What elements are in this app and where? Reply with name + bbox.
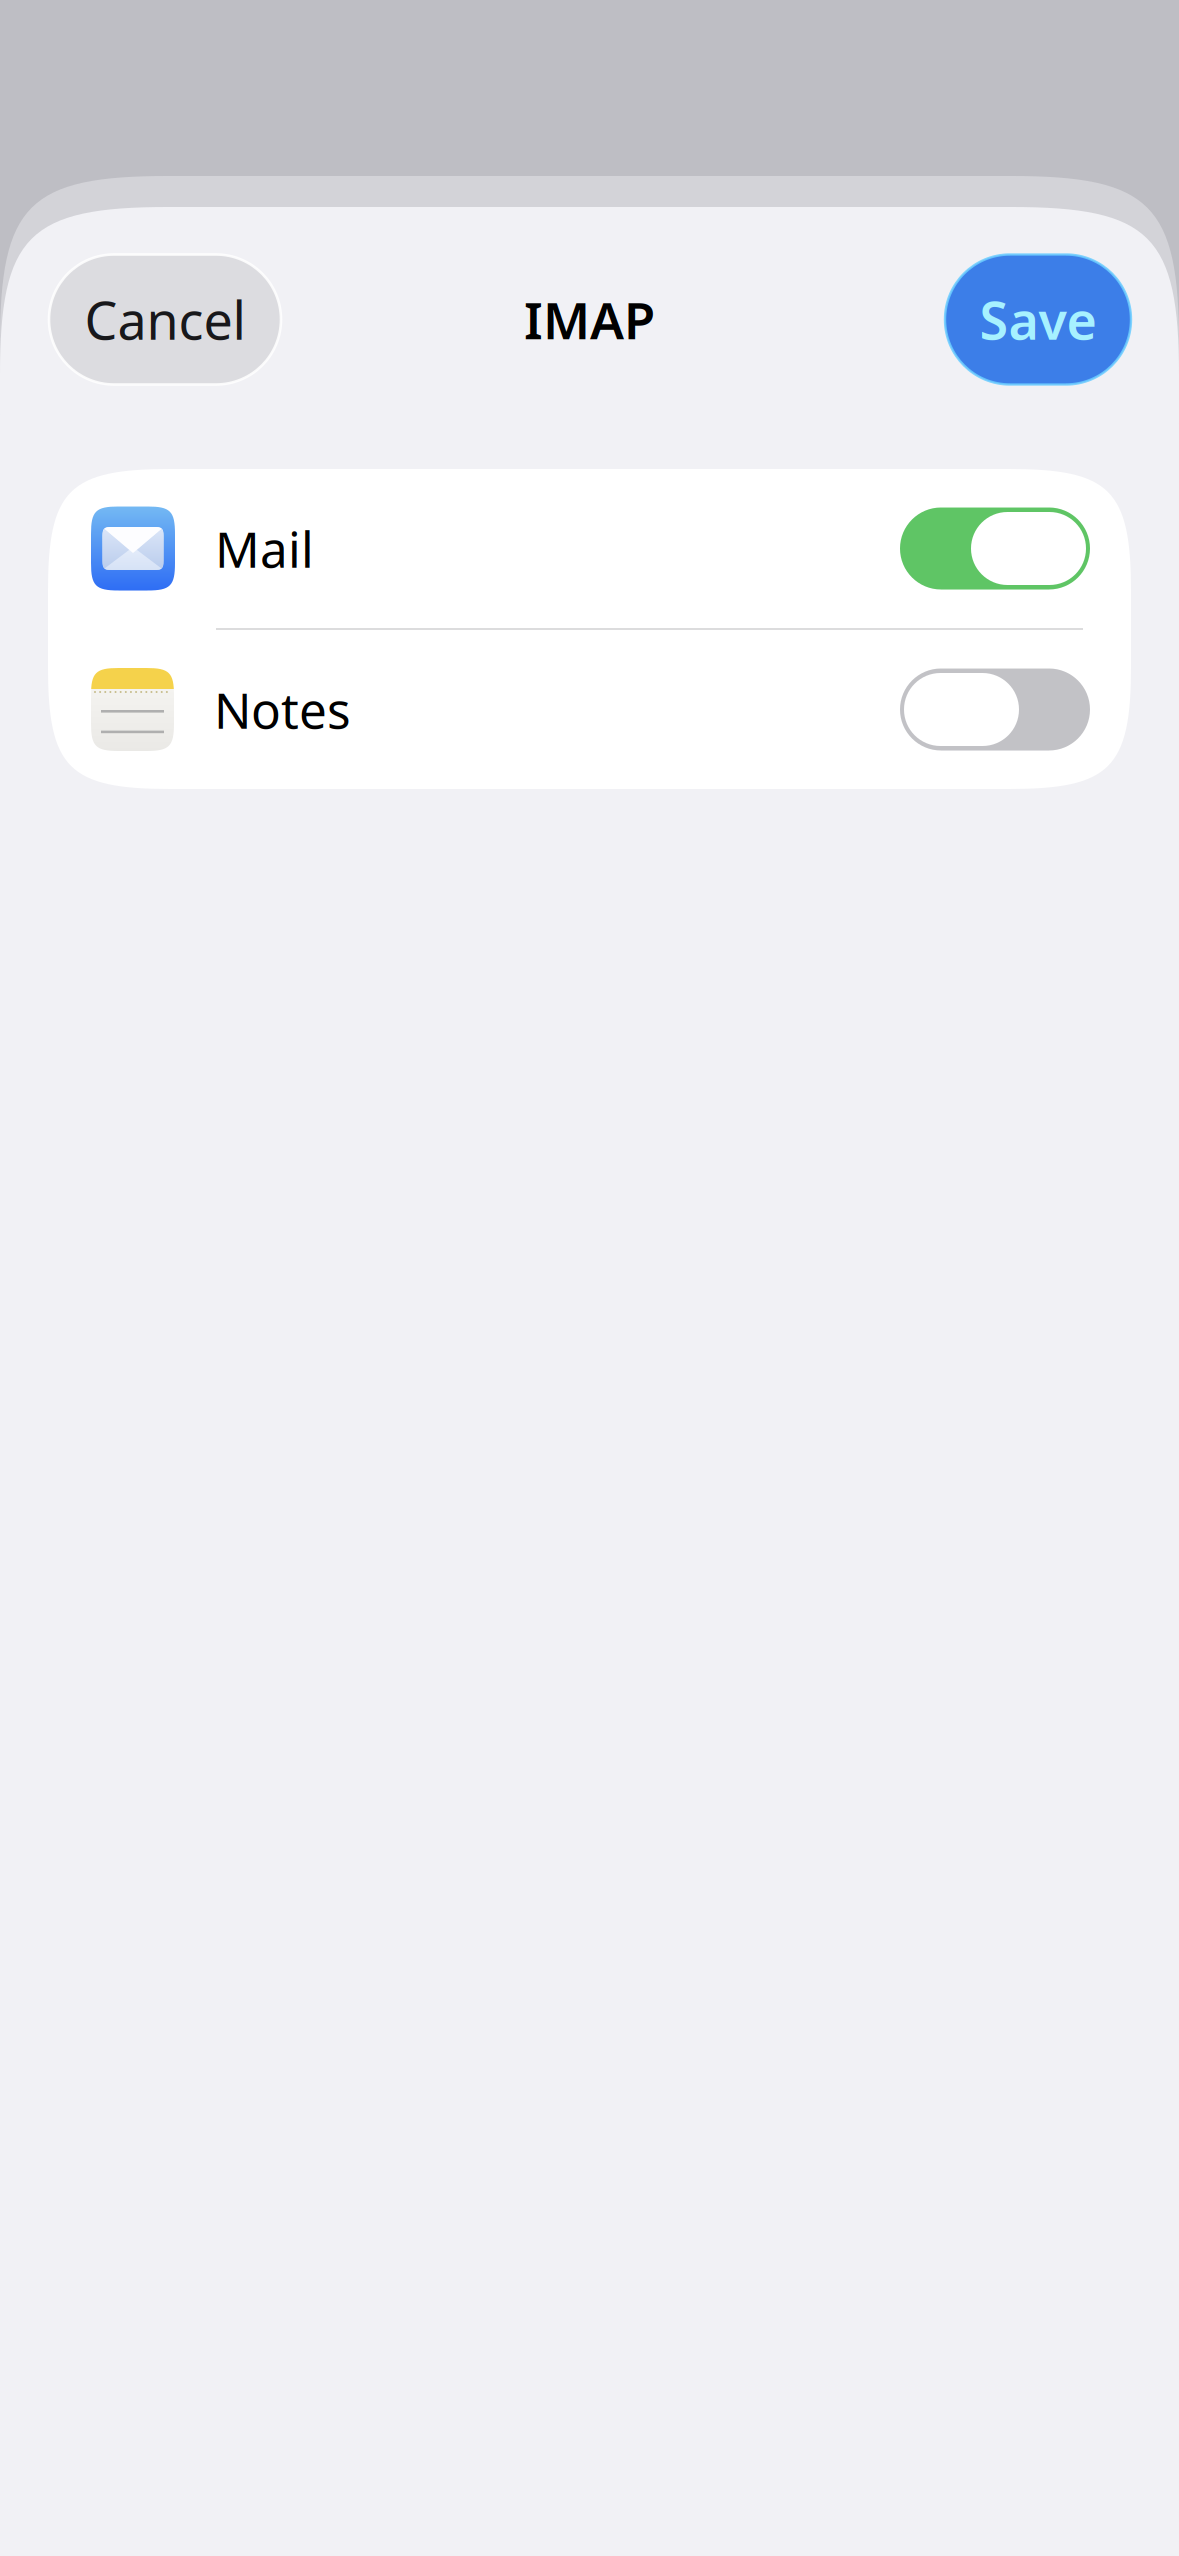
staticText: Cancel — [84, 285, 245, 354]
staticText: Mail — [215, 516, 314, 581]
staticText: Save — [979, 285, 1096, 354]
button[interactable]: Notes — [48, 630, 1131, 789]
staticText: IMAP — [524, 286, 655, 353]
staticText: Notes — [214, 677, 351, 742]
button[interactable]: Save — [945, 254, 1131, 384]
button[interactable]: Cancel — [49, 254, 281, 384]
button[interactable]: Mail — [48, 469, 1131, 628]
